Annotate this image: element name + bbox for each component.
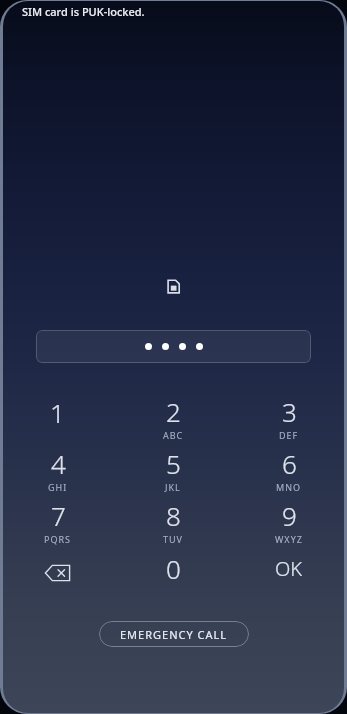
staticText: WXYZ [275, 533, 303, 545]
staticText: 5 [166, 446, 181, 481]
staticText: PQRS [44, 533, 72, 545]
button[interactable]: 8 [115, 495, 231, 547]
button[interactable]: EMERGENCY CALL [99, 621, 249, 647]
button[interactable]: 7 [0, 495, 115, 547]
staticText: 7 [51, 498, 66, 533]
button[interactable]: 0 [115, 547, 231, 599]
button[interactable]: Backspace [0, 547, 115, 599]
staticText: 9 [282, 498, 297, 533]
staticText: ABC [163, 429, 184, 441]
button[interactable] [36, 330, 311, 363]
staticText: GHI [48, 481, 68, 493]
staticText: 6 [282, 446, 297, 481]
button[interactable]: 1 [0, 391, 115, 443]
staticText: DEF [279, 429, 299, 441]
staticText: 3 [282, 394, 297, 429]
staticText: SIM card is PUK-locked. [22, 4, 145, 19]
staticText: EMERGENCY CALL [120, 627, 228, 642]
staticText: 4 [51, 446, 66, 481]
button[interactable]: 5 [115, 443, 231, 495]
button[interactable]: 9 [231, 495, 347, 547]
button[interactable]: 2 [115, 391, 231, 443]
staticText: 8 [166, 498, 181, 533]
button[interactable]: 6 [231, 443, 347, 495]
staticText: OK [275, 555, 303, 582]
button[interactable]: OK [231, 547, 347, 599]
staticText: 1 [50, 395, 65, 430]
staticText: TUV [163, 533, 183, 545]
button[interactable]: 3 [231, 391, 347, 443]
staticText: 2 [166, 394, 181, 429]
staticText: MNO [276, 481, 302, 493]
button[interactable]: 4 [0, 443, 115, 495]
staticText: 0 [166, 551, 181, 586]
staticText: JKL [165, 481, 181, 493]
